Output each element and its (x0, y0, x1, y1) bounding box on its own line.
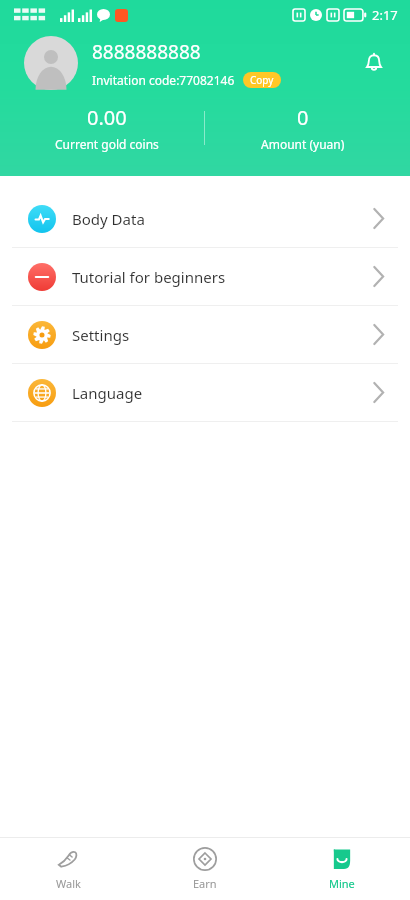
staticText: Settings (72, 325, 373, 345)
button[interactable]: Language (0, 364, 410, 421)
staticText: 8888888888 (92, 39, 201, 65)
button[interactable]: Notifications (356, 45, 392, 81)
staticText: Copy (250, 73, 274, 87)
button[interactable]: Copy (243, 72, 281, 88)
button[interactable]: Walk (0, 838, 136, 900)
staticText: Amount (yuan) (261, 136, 345, 152)
staticText: Invitation code:77082146 (92, 72, 235, 88)
button[interactable]: Settings (0, 306, 410, 363)
staticText: 2:17 (372, 6, 398, 24)
button[interactable]: Earn (136, 838, 273, 900)
staticText: Tutorial for beginners (72, 267, 373, 287)
staticText: Current gold coins (55, 136, 159, 152)
staticText: 0.00 (87, 104, 127, 131)
button[interactable]: Tutorial for beginners (0, 248, 410, 305)
button[interactable]: Mine (273, 838, 410, 900)
staticText: Walk (56, 876, 81, 891)
staticText: Language (72, 383, 373, 403)
staticText: Earn (193, 876, 217, 891)
staticText: Mine (329, 876, 355, 891)
button[interactable]: Body Data (0, 190, 410, 247)
staticText: 0 (297, 104, 309, 131)
staticText: Body Data (72, 209, 373, 229)
